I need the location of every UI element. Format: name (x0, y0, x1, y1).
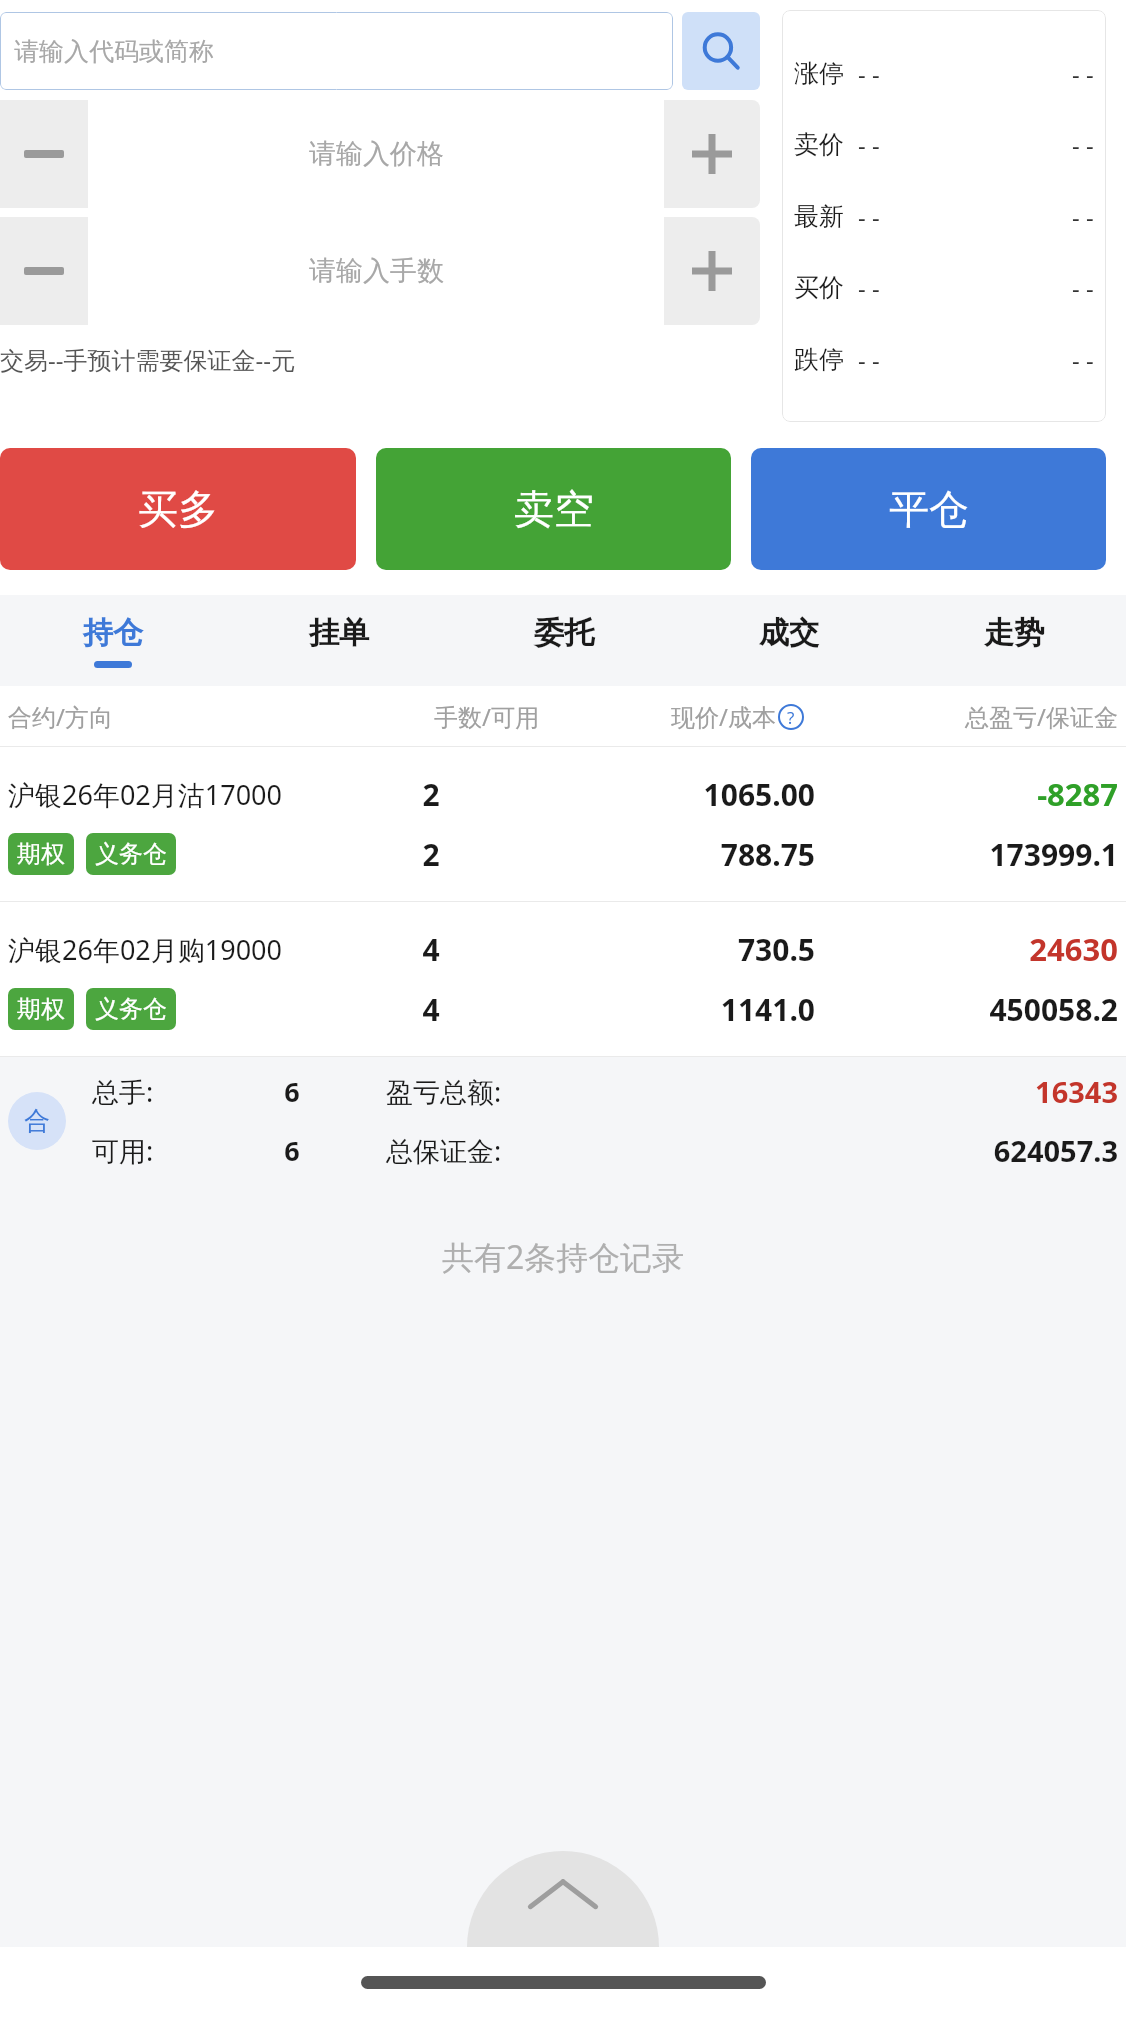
button[interactable]: 成交 (676, 595, 901, 686)
staticText: 730.5 (532, 929, 815, 970)
button[interactable]: 涨停 (782, 10, 1106, 422)
staticText: 买多 (138, 484, 218, 534)
staticText: 6 (232, 1073, 352, 1110)
button[interactable]: Increase (664, 217, 760, 325)
staticText: 买价 (794, 272, 844, 303)
staticText: - - (858, 343, 880, 376)
staticText: 义务仓 (95, 839, 167, 869)
staticText: 走势 (984, 614, 1044, 652)
staticText: 合 (24, 1105, 50, 1138)
staticText: 合约/方向 (8, 700, 323, 733)
staticText: - - (1072, 128, 1094, 161)
button[interactable]: Increase (664, 100, 760, 208)
staticText: 173999.1 (815, 834, 1118, 875)
staticText: 最新 (794, 201, 844, 232)
staticText: 可用: (92, 1132, 232, 1169)
staticText: 平仓 (889, 484, 969, 534)
staticText: 2 (330, 774, 532, 815)
staticText: - - (858, 128, 880, 161)
button[interactable]: 请输入价格 (88, 100, 664, 208)
button[interactable]: 挂单 (226, 595, 451, 686)
staticText: 总保证金: (386, 1132, 868, 1169)
staticText: 期权 (17, 839, 65, 869)
staticText: - - (1072, 343, 1094, 376)
staticText: 请输入代码或简称 (14, 36, 214, 67)
staticText: 总盈亏/保证金 (804, 700, 1118, 733)
staticText: -8287 (815, 773, 1118, 815)
staticText: 6 (232, 1132, 352, 1169)
button[interactable]: 请输入代码或简称 (0, 12, 673, 90)
staticText: - - (1072, 271, 1094, 304)
button[interactable]: 沪银26年02月沽17000 (0, 747, 1126, 901)
staticText: 现价/成本 (671, 700, 776, 733)
button[interactable]: 持仓 (0, 595, 226, 686)
button[interactable]: 平仓 (751, 448, 1106, 570)
staticText: - - (858, 57, 880, 90)
staticText: - - (858, 271, 880, 304)
button[interactable]: 买多 (0, 448, 356, 570)
staticText: 沪银26年02月沽17000 (8, 776, 330, 813)
staticText: 交易--手预计需要保证金--元 (0, 343, 295, 376)
staticText: 4 (330, 989, 532, 1030)
staticText: 卖价 (794, 129, 844, 160)
staticText: 卖空 (514, 484, 594, 534)
button[interactable]: 走势 (901, 595, 1126, 686)
staticText: 挂单 (309, 614, 369, 652)
staticText: - - (1072, 57, 1094, 90)
staticText: - - (858, 200, 880, 233)
button[interactable]: 沪银26年02月购19000 (0, 902, 1126, 1056)
staticText: - - (1072, 200, 1094, 233)
staticText: 跌停 (794, 344, 844, 375)
staticText: ? (787, 706, 795, 729)
staticText: 委托 (534, 614, 594, 652)
button[interactable]: Expand panel (467, 1851, 659, 1947)
staticText: 共有2条持仓记录 (442, 1235, 685, 1279)
staticText: 16343 (868, 1072, 1118, 1111)
staticText: 持仓 (83, 614, 143, 652)
button[interactable]: Decrease (0, 100, 88, 208)
staticText: 手数/可用 (323, 700, 539, 733)
button[interactable]: Decrease (0, 217, 88, 325)
staticText: 沪银26年02月购19000 (8, 931, 330, 968)
staticText: 请输入手数 (309, 254, 444, 288)
staticText: 1141.0 (532, 989, 815, 1030)
staticText: 成交 (759, 614, 819, 652)
staticText: 期权 (17, 994, 65, 1024)
staticText: 450058.2 (815, 989, 1118, 1030)
button[interactable]: Search (682, 12, 760, 90)
button[interactable]: 卖空 (376, 448, 731, 570)
staticText: 盈亏总额: (386, 1073, 868, 1110)
staticText: 624057.3 (868, 1131, 1118, 1170)
staticText: 24630 (815, 928, 1118, 970)
staticText: 涨停 (794, 58, 844, 89)
staticText: 总手: (92, 1073, 232, 1110)
button[interactable]: Help (778, 704, 804, 730)
button[interactable]: 委托 (451, 595, 676, 686)
staticText: 义务仓 (95, 994, 167, 1024)
staticText: 请输入价格 (309, 137, 444, 171)
staticText: 2 (330, 834, 532, 875)
button[interactable]: 合 (0, 1057, 1126, 1185)
button[interactable]: 请输入手数 (88, 217, 664, 325)
staticText: 788.75 (532, 834, 815, 875)
staticText: 1065.00 (532, 774, 815, 815)
staticText: 4 (330, 929, 532, 970)
